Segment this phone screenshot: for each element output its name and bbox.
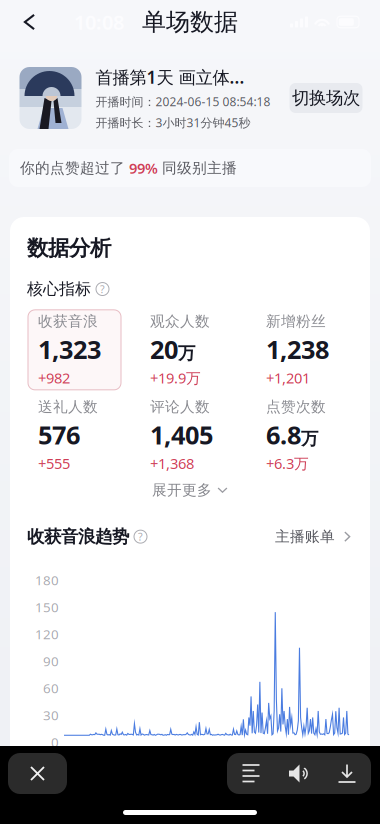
staticText: 开播时间：2024-06-15 08:54:18	[95, 94, 270, 109]
button[interactable]: 主播账单	[275, 528, 353, 546]
staticText: 99%	[129, 158, 158, 178]
button[interactable]: 返回	[8, 0, 52, 44]
staticText: 展开更多	[152, 481, 212, 499]
staticText: 你的点赞超过了	[20, 159, 129, 177]
staticText: 收获音浪	[38, 312, 98, 330]
staticText: +1,368	[150, 453, 194, 473]
button[interactable]: 下载	[323, 753, 371, 794]
button[interactable]: 切换场次	[289, 83, 362, 113]
staticText: 1,405	[150, 418, 213, 451]
staticText: 数据分析	[27, 235, 111, 261]
staticText: 主播账单	[275, 528, 335, 546]
staticText: ?	[100, 282, 105, 296]
staticText: 切换场次	[292, 87, 360, 109]
button[interactable]: 展开更多	[27, 475, 353, 505]
staticText: 首播第1天 画立体...	[95, 66, 244, 89]
staticText: +19.9万	[150, 368, 201, 387]
staticText: 核心指标	[27, 279, 91, 299]
staticText: 576	[38, 418, 80, 451]
staticText: 30	[43, 706, 59, 724]
staticText: +1,201	[266, 368, 310, 387]
staticText: +982	[38, 368, 70, 387]
staticText: 评论人数	[150, 398, 210, 416]
staticText: 万	[178, 342, 195, 364]
staticText: 1,238	[266, 332, 329, 366]
staticText: ?	[138, 530, 143, 544]
staticText: 同级别主播	[158, 159, 237, 177]
staticText: 开播时长：3小时31分钟45秒	[95, 114, 250, 130]
button[interactable]: 声音	[275, 753, 323, 794]
staticText: 万	[301, 428, 318, 449]
staticText: 单场数据	[142, 7, 238, 37]
staticText: 送礼人数	[38, 398, 98, 416]
staticText: 180	[35, 571, 59, 589]
staticText: +6.3万	[266, 453, 309, 473]
staticText: 60	[43, 679, 59, 697]
staticText: 观众人数	[150, 312, 210, 330]
staticText: 120	[35, 625, 59, 643]
staticText: 0	[51, 733, 59, 751]
staticText: 90	[43, 652, 59, 670]
staticText: 新增粉丝	[266, 312, 326, 330]
staticText: +555	[38, 453, 70, 473]
button[interactable]: 关闭	[8, 753, 67, 794]
staticText: 收获音浪趋势	[27, 526, 129, 547]
staticText: 150	[35, 598, 59, 616]
staticText: 1,323	[38, 332, 101, 366]
staticText: 6.8	[266, 418, 301, 451]
staticText: 点赞次数	[266, 398, 326, 416]
staticText: 20	[150, 332, 178, 366]
button[interactable]: 列表	[227, 753, 275, 794]
